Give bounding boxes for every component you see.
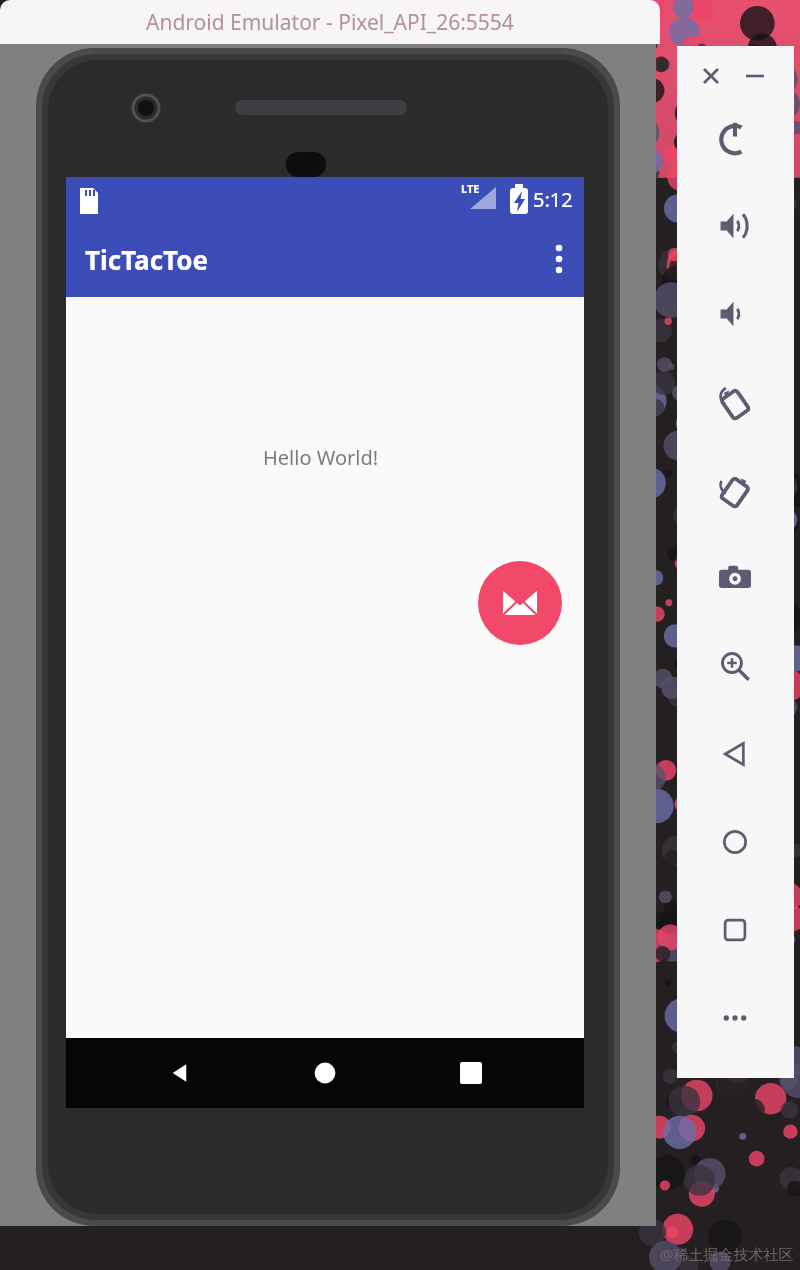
staticText: @稀土掘金技术社区: [660, 1244, 794, 1264]
button[interactable]: Recent apps: [439, 1041, 503, 1105]
button[interactable]: Back: [148, 1041, 212, 1105]
button[interactable]: Minimize: [733, 54, 777, 98]
button[interactable]: Compose message: [478, 561, 562, 645]
button[interactable]: Back: [707, 726, 763, 782]
button[interactable]: More options: [534, 228, 584, 290]
button[interactable]: More: [707, 990, 763, 1046]
staticText: Android Emulator - Pixel_API_26:5554: [146, 8, 514, 37]
staticText: TicTacToe: [85, 242, 209, 277]
button[interactable]: Overview: [707, 902, 763, 958]
staticText: LTE: [461, 181, 480, 196]
button[interactable]: Rotate right: [707, 462, 763, 518]
button[interactable]: Home: [293, 1041, 357, 1105]
staticText: 5:12: [533, 186, 573, 213]
button[interactable]: Home: [707, 814, 763, 870]
button[interactable]: Take screenshot: [707, 550, 763, 606]
button[interactable]: Close: [689, 54, 733, 98]
staticText: Hello World!: [263, 444, 379, 471]
button[interactable]: Volume up: [707, 198, 763, 254]
button[interactable]: Rotate left: [707, 374, 763, 430]
button[interactable]: Zoom: [707, 638, 763, 694]
button[interactable]: Volume down: [707, 286, 763, 342]
button[interactable]: Power: [707, 110, 763, 166]
